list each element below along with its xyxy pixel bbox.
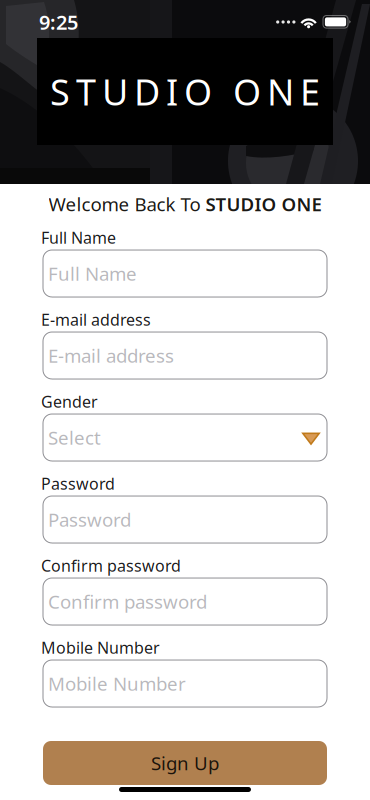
staticText: E-mail address (41, 309, 151, 330)
staticText: Confirm password (48, 589, 207, 614)
staticText: E-mail address (48, 343, 174, 368)
button[interactable]: Select (43, 414, 327, 461)
button[interactable]: E-mail address (43, 332, 327, 379)
staticText: Mobile Number (48, 671, 186, 696)
button[interactable]: Password (43, 496, 327, 543)
staticText: Sign Up (151, 751, 219, 775)
staticText: Confirm password (41, 555, 181, 576)
staticText: Password (48, 507, 131, 532)
staticText: Gender (41, 391, 98, 412)
staticText: S T U D I O O N E (50, 68, 320, 115)
button[interactable]: Mobile Number (43, 660, 327, 707)
staticText: Select (48, 425, 101, 450)
button[interactable]: Confirm password (43, 578, 327, 625)
button[interactable]: Sign Up (43, 741, 327, 785)
staticText: Full Name (48, 261, 137, 286)
staticText: Password (41, 473, 115, 494)
staticText: Welcome Back To STUDIO ONE (48, 192, 321, 216)
button[interactable]: Full Name (43, 250, 327, 297)
staticText: Mobile Number (41, 637, 160, 658)
staticText: 9:25 (39, 9, 78, 35)
staticText: Full Name (41, 227, 116, 248)
